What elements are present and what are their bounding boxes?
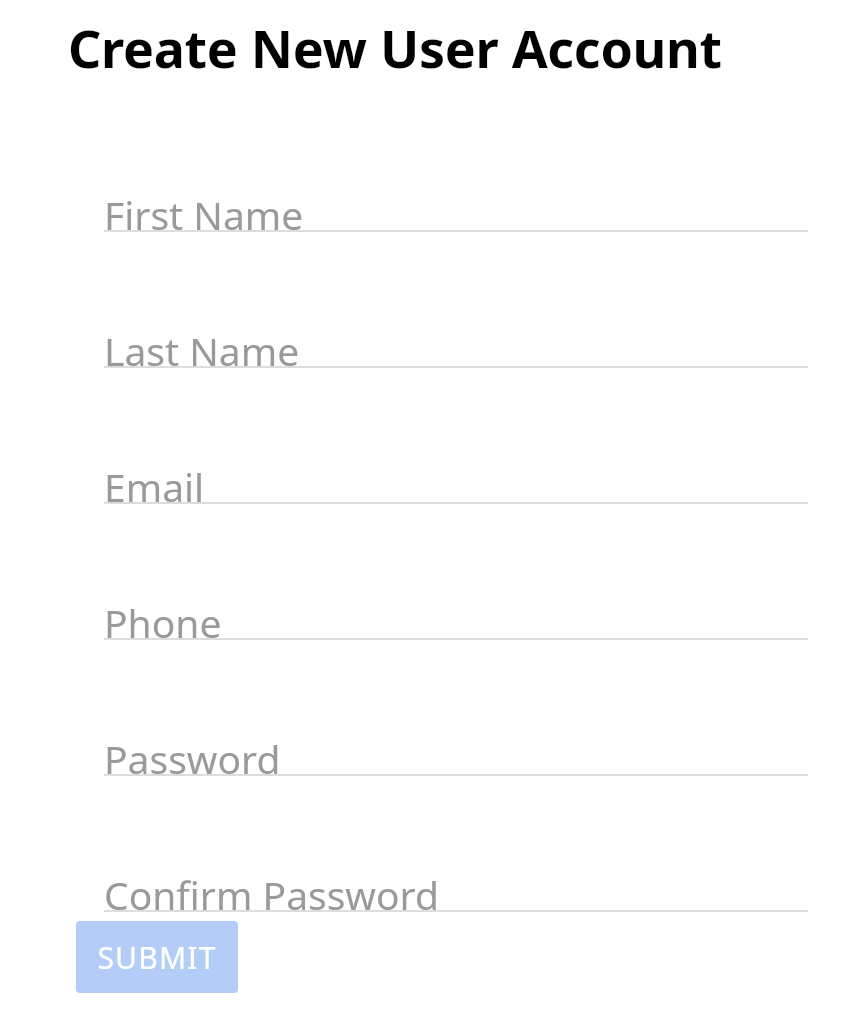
button[interactable]: Last Name — [104, 294, 808, 368]
button[interactable]: Password — [104, 702, 808, 776]
button[interactable]: Email — [104, 430, 808, 504]
staticText: Password — [104, 732, 281, 785]
button[interactable]: Confirm Password — [104, 838, 808, 912]
button[interactable]: Phone — [104, 566, 808, 640]
button[interactable]: SUBMIT — [76, 921, 238, 993]
staticText: First Name — [104, 188, 304, 241]
staticText: Create New User Account — [68, 12, 722, 83]
staticText: Email — [104, 460, 205, 513]
staticText: Last Name — [104, 324, 300, 377]
staticText: Confirm Password — [104, 868, 439, 921]
staticText: SUBMIT — [97, 937, 217, 978]
button[interactable]: First Name — [104, 158, 808, 232]
staticText: Phone — [104, 596, 222, 649]
